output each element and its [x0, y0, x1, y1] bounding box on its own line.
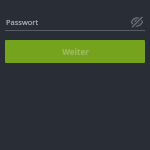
button[interactable]: Passwort anzeigen — [129, 14, 145, 30]
staticText: Passwort — [6, 17, 39, 27]
staticText: Weiter — [62, 46, 89, 57]
button[interactable]: Passwort — [5, 13, 145, 30]
button[interactable]: Weiter — [5, 40, 145, 63]
